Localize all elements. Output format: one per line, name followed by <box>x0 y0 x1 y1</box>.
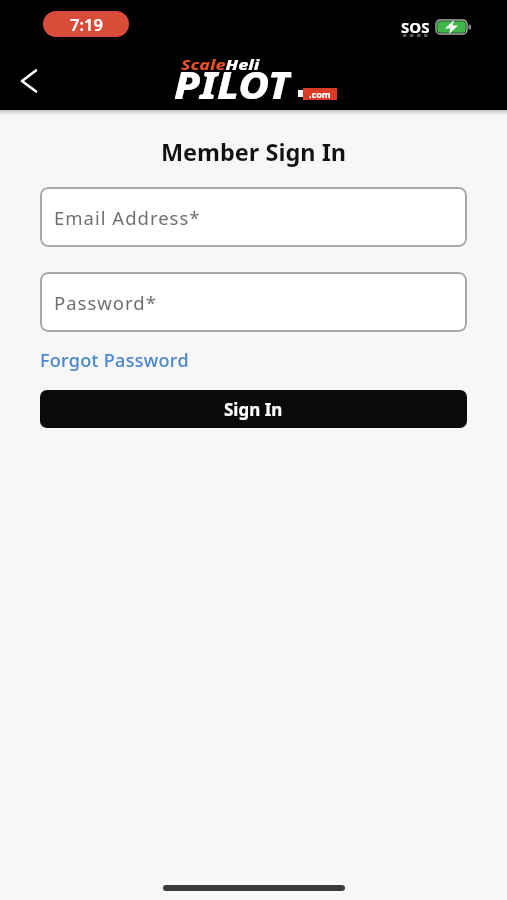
staticText: .com <box>309 88 331 100</box>
staticText: Email Address* <box>54 205 201 230</box>
staticText: SOS <box>401 17 430 37</box>
button[interactable]: Sign In <box>40 390 467 428</box>
button[interactable] <box>10 60 50 100</box>
staticText: ScaleHeli <box>181 55 260 74</box>
button[interactable]: Password* <box>40 272 467 332</box>
staticText: Member Sign In <box>40 136 467 168</box>
button[interactable]: Forgot Password <box>40 348 189 373</box>
staticText: PILOT <box>174 59 291 107</box>
staticText: Sign In <box>224 398 283 421</box>
button[interactable]: Email Address* <box>40 187 467 247</box>
staticText: 7:19 <box>70 13 103 35</box>
staticText: Password* <box>54 290 157 315</box>
